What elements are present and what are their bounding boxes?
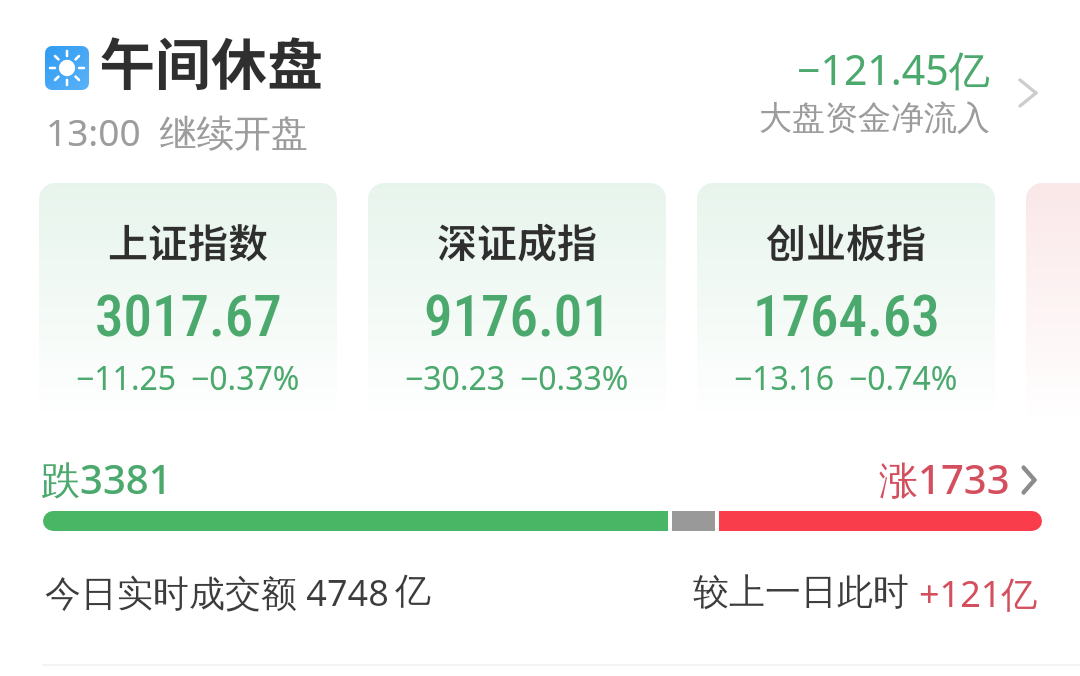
- staticText: 创业板指: [766, 212, 926, 270]
- button[interactable]: [1026, 183, 1080, 423]
- other: Fund flow details: [1013, 73, 1043, 113]
- staticText: −0.33%: [520, 356, 629, 400]
- button[interactable]: 跌: [0, 450, 1080, 506]
- other: Rise and fall details: [1014, 460, 1044, 500]
- staticText: 上证指数: [108, 212, 268, 270]
- staticText: 今日实时成交额 4748: [45, 568, 389, 617]
- staticText: −30.23: [405, 356, 506, 400]
- button[interactable]: −121.45亿: [730, 41, 1050, 151]
- staticText: 跌: [41, 456, 80, 505]
- button[interactable]: 上证指数: [39, 183, 337, 423]
- staticText: 13:00 继续开盘: [46, 106, 308, 157]
- staticText: 涨: [879, 456, 918, 505]
- staticText: 深证成指: [437, 212, 597, 270]
- staticText: +121亿: [919, 569, 1038, 618]
- staticText: −0.74%: [849, 356, 958, 400]
- button[interactable]: 深证成指: [368, 183, 666, 423]
- button[interactable]: 午间休盘: [30, 30, 370, 160]
- staticText: 大盘资金净流入: [759, 97, 990, 139]
- staticText: 3381: [80, 451, 172, 505]
- staticText: 午间休盘: [99, 20, 323, 101]
- staticText: 3017.67: [95, 283, 282, 350]
- staticText: −0.37%: [191, 356, 300, 400]
- staticText: 1733: [918, 451, 1010, 505]
- button[interactable]: 创业板指: [697, 183, 995, 423]
- staticText: 较上一日此时: [693, 569, 909, 614]
- staticText: 9176.01: [424, 283, 611, 350]
- staticText: −13.16: [734, 356, 835, 400]
- staticText: −11.25: [76, 356, 177, 400]
- staticText: 1764.63: [753, 283, 940, 350]
- staticText: 亿: [395, 568, 431, 613]
- staticText: −121.45亿: [797, 41, 990, 97]
